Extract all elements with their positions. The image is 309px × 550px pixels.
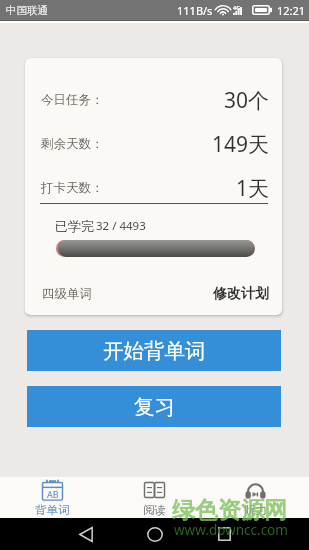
staticText: 今日任务：: [41, 92, 104, 108]
staticText: 30个: [224, 86, 270, 115]
staticText: 剩余天数：: [41, 136, 104, 152]
staticText: www.downcc.com: [174, 521, 288, 539]
staticText: 绿色资源网: [172, 496, 287, 525]
button[interactable]: 复习: [27, 386, 281, 427]
button[interactable]: AB: [9, 477, 95, 518]
staticText: 已学完: [55, 218, 94, 234]
staticText: 149天: [212, 130, 270, 159]
staticText: 12:21: [277, 3, 306, 18]
staticText: 阅读: [143, 503, 166, 517]
staticText: 中国联通: [6, 4, 48, 17]
staticText: 4G: [233, 4, 241, 11]
button[interactable]: 阅读: [111, 477, 197, 518]
staticText: AB: [47, 488, 59, 500]
button[interactable]: Back: [70, 518, 102, 550]
staticText: 打卡天数：: [41, 180, 104, 196]
staticText: 四级单词: [42, 286, 92, 302]
button[interactable]: 听力: [212, 477, 298, 518]
staticText: 开始背单词: [103, 338, 206, 364]
staticText: 背单词: [35, 503, 70, 517]
staticText: 1天: [236, 174, 270, 203]
staticText: 复习: [134, 394, 175, 420]
button[interactable]: 修改计划: [213, 285, 269, 303]
staticText: 听力: [244, 503, 267, 517]
staticText: 32 / 4493: [96, 218, 146, 234]
button[interactable]: Recents: [208, 518, 240, 550]
button[interactable]: Home: [139, 518, 171, 550]
staticText: 111B/s: [177, 3, 213, 18]
button[interactable]: 开始背单词: [27, 330, 281, 371]
